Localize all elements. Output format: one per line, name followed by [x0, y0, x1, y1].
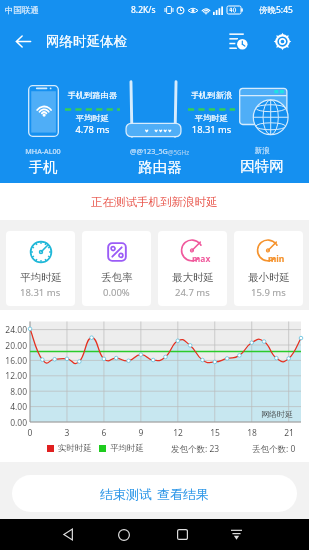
staticText: max	[192, 253, 211, 265]
staticText: 网络时延体检	[46, 33, 127, 50]
staticText: 手机	[0, 158, 93, 176]
staticText: 因特网	[212, 157, 309, 175]
staticText: 实时时延	[58, 443, 92, 454]
staticText: @5GHz	[168, 148, 190, 156]
staticText: 查看结果	[157, 486, 209, 502]
staticText: 丢包个数: 0	[252, 443, 296, 455]
staticText: 发包个数: 23	[171, 443, 220, 455]
staticText: 结束测试	[100, 486, 152, 502]
staticText: 16.00	[0, 355, 27, 367]
staticText: 18.31 ms	[20, 286, 61, 299]
staticText: 21	[279, 427, 299, 439]
staticText: 24.7 ms	[175, 286, 210, 299]
staticText: 手机到路由器	[65, 90, 120, 100]
staticText: 18	[242, 427, 262, 439]
button[interactable]: Back	[50, 519, 86, 550]
staticText: @@123_5G	[130, 146, 168, 156]
button[interactable]: 平均时延	[6, 231, 75, 306]
staticText: MHA-AL00	[0, 146, 93, 156]
staticText: 0	[20, 427, 40, 439]
staticText: 12.00	[0, 370, 27, 382]
staticText: 中国联通	[5, 5, 39, 16]
staticText: 最大时延	[172, 271, 214, 284]
staticText: 6	[94, 427, 114, 439]
button[interactable]: Hide navigation bar	[218, 519, 254, 550]
button[interactable]: Back	[9, 27, 37, 55]
staticText: 9	[131, 427, 151, 439]
button[interactable]: History records	[222, 25, 254, 57]
staticText: 24.00	[0, 324, 27, 336]
staticText: 平均时延	[110, 443, 144, 454]
staticText: 4.00	[0, 401, 27, 413]
button[interactable]: min	[234, 231, 303, 306]
staticText: 平均时延	[65, 113, 120, 123]
button[interactable]: max	[158, 231, 227, 306]
staticText: 0.00	[0, 417, 27, 429]
staticText: 平均时延	[188, 113, 235, 123]
staticText: 丢包率	[101, 271, 133, 284]
staticText: 手机到新浪	[188, 90, 235, 100]
button[interactable]: Home	[106, 519, 142, 550]
button[interactable]: Recent apps	[164, 519, 200, 550]
staticText: 平均时延	[20, 271, 62, 284]
staticText: 0.00%	[103, 286, 130, 299]
staticText: 正在测试手机到新浪时延	[91, 195, 218, 209]
staticText: 12	[168, 427, 188, 439]
staticText: 最小时延	[248, 271, 290, 284]
staticText: 网络时延	[261, 409, 293, 419]
staticText: 15	[205, 427, 225, 439]
staticText: 4.78 ms	[65, 123, 120, 136]
staticText: 20.00	[0, 340, 27, 352]
button[interactable]: Settings	[266, 25, 298, 57]
staticText: 傍晚5:45	[259, 4, 293, 16]
staticText: 15.9 ms	[251, 286, 286, 299]
staticText: 路由器	[110, 158, 210, 176]
staticText: 8.2K/s	[131, 4, 156, 16]
staticText: 18.31 ms	[188, 123, 235, 136]
staticText: min	[268, 253, 285, 265]
staticText: 3	[57, 427, 77, 439]
button[interactable]: 丢包率	[82, 231, 151, 306]
staticText: 8.00	[0, 386, 27, 398]
staticText: 新浪	[212, 146, 309, 155]
button[interactable]: 结束测试	[12, 475, 297, 512]
